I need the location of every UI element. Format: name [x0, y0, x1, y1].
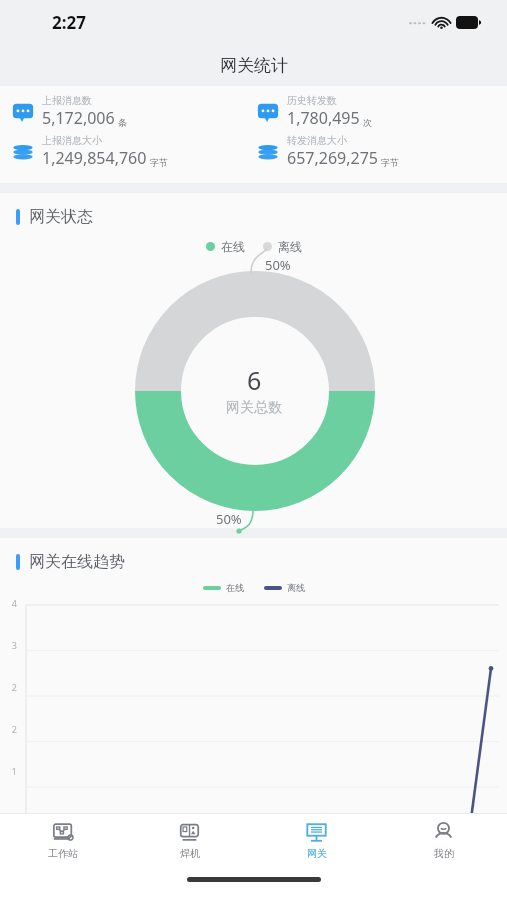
button[interactable]: 工作站	[0, 814, 126, 866]
staticText: 次	[363, 117, 372, 128]
staticText: 2	[11, 723, 17, 735]
staticText: 字节	[381, 157, 399, 168]
button[interactable]: 上报消息数	[12, 94, 249, 129]
staticText: 4	[11, 597, 17, 609]
staticText: 1,249,854,760	[42, 147, 147, 169]
staticText: 2:27	[52, 11, 86, 34]
button[interactable]: 焊机	[126, 814, 253, 866]
staticText: 2	[11, 681, 17, 693]
button[interactable]: 转发消息大小	[257, 134, 495, 169]
staticText: 50%	[265, 256, 291, 274]
staticText: 网关总数	[226, 399, 282, 417]
staticText: 在线	[221, 239, 245, 254]
staticText: 网关	[307, 847, 327, 860]
staticText: 字节	[150, 157, 168, 168]
staticText: 1	[11, 765, 17, 777]
staticText: 我的	[434, 847, 454, 860]
staticText: 50%	[216, 510, 242, 528]
staticText: 历史转发数	[287, 94, 337, 107]
staticText: 上报消息数	[42, 94, 92, 107]
button[interactable]: 我的	[380, 814, 507, 866]
button[interactable]: 上报消息大小	[12, 134, 249, 169]
staticText: 条	[118, 117, 127, 128]
staticText: 网关状态	[29, 207, 93, 227]
staticText: 1,780,495	[287, 107, 360, 129]
staticText: 离线	[287, 582, 305, 593]
staticText: 657,269,275	[287, 147, 378, 169]
staticText: 工作站	[48, 847, 78, 860]
button[interactable]: 网关	[253, 814, 380, 866]
staticText: 网关在线趋势	[29, 552, 125, 572]
staticText: 在线	[226, 582, 244, 593]
staticText: 网关统计	[220, 55, 288, 76]
staticText: 3	[11, 639, 17, 651]
staticText: 5,172,006	[42, 107, 115, 129]
button[interactable]: 历史转发数	[257, 94, 495, 129]
staticText: 离线	[278, 239, 302, 254]
staticText: 6	[247, 363, 262, 397]
staticText: 焊机	[180, 847, 200, 860]
staticText: 上报消息大小	[42, 134, 102, 147]
staticText: 转发消息大小	[287, 134, 347, 147]
